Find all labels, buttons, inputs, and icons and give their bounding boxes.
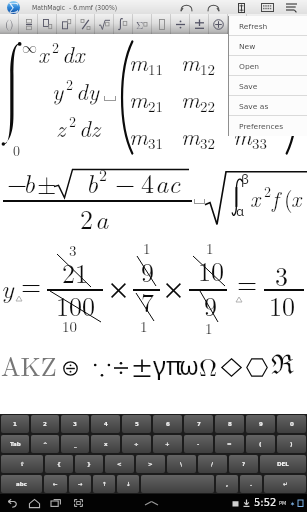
staticText: 22: [200, 95, 216, 116]
staticText: 9: [141, 253, 155, 290]
button[interactable]: Undo: [178, 0, 194, 14]
staticText: ÷: [134, 441, 139, 447]
button[interactable]: Preferences: [228, 116, 307, 136]
staticText: γ: [153, 348, 166, 382]
staticText: 32: [200, 132, 216, 153]
button[interactable]: More: [228, 14, 247, 34]
staticText: ±: [37, 172, 57, 197]
button[interactable]: .: [240, 475, 262, 493]
staticText: 31: [148, 132, 164, 153]
button[interactable]: Screenshot: [70, 495, 86, 511]
button[interactable]: Space: [141, 475, 214, 493]
button[interactable]: ↑: [93, 475, 115, 493]
button[interactable]: Summation: [133, 14, 152, 34]
button[interactable]: ↵: [264, 475, 306, 493]
button[interactable]: Back: [4, 495, 20, 511]
button[interactable]: Keyboard: [260, 0, 274, 14]
button[interactable]: Insert: [209, 14, 228, 34]
button[interactable]: Redo: [205, 0, 221, 14]
staticText: 10: [198, 252, 225, 289]
staticText: \: [180, 461, 183, 467]
button[interactable]: -: [184, 435, 213, 453]
button[interactable]: Bracket: [152, 14, 171, 34]
staticText: b: [23, 164, 35, 201]
button[interactable]: 0: [277, 415, 306, 433]
button[interactable]: ^: [31, 435, 59, 453]
staticText: m: [181, 45, 200, 78]
staticText: Ω: [199, 348, 218, 383]
button[interactable]: _: [61, 435, 89, 453]
button[interactable]: >: [136, 455, 165, 473]
button[interactable]: Parentheses: [0, 14, 19, 34]
staticText: m: [181, 119, 200, 152]
button[interactable]: }: [75, 455, 103, 473]
staticText: 2: [66, 74, 73, 94]
staticText: 5: [135, 421, 139, 427]
staticText: f: [272, 182, 279, 213]
button[interactable]: Save: [228, 76, 307, 96]
staticText: Preferences: [239, 122, 284, 131]
button[interactable]: ,: [216, 475, 238, 493]
staticText: <: [117, 461, 122, 467]
button[interactable]: \: [167, 455, 196, 473]
button[interactable]: /: [198, 455, 227, 473]
button[interactable]: 5: [122, 415, 151, 433]
button[interactable]: Documents: [235, 1, 248, 14]
button[interactable]: Menu: [284, 0, 298, 14]
button[interactable]: 6: [153, 415, 182, 433]
staticText: 2: [43, 421, 47, 427]
button[interactable]: Fraction: [19, 14, 38, 34]
button[interactable]: ↓: [117, 475, 139, 493]
button[interactable]: Superscript: [57, 14, 76, 34]
button[interactable]: →: [69, 475, 91, 493]
button[interactable]: Integral: [114, 14, 133, 34]
button[interactable]: (: [246, 435, 275, 453]
staticText: m: [233, 82, 252, 115]
button[interactable]: 8: [215, 415, 244, 433]
button[interactable]: +: [153, 435, 182, 453]
button[interactable]: 3: [61, 415, 89, 433]
button[interactable]: ?: [229, 455, 258, 473]
staticText: =: [237, 264, 258, 301]
button[interactable]: 7: [184, 415, 213, 433]
button[interactable]: 1: [1, 415, 29, 433]
staticText: >: [148, 461, 153, 467]
staticText: 6: [166, 421, 170, 427]
staticText: 9: [259, 421, 263, 427]
staticText: New: [239, 42, 256, 51]
button[interactable]: Home: [26, 495, 42, 511]
button[interactable]: New: [228, 36, 307, 56]
button[interactable]: ): [277, 435, 306, 453]
button[interactable]: Tab: [1, 435, 29, 453]
button[interactable]: x: [91, 435, 120, 453]
staticText: }: [87, 461, 91, 467]
button[interactable]: 4: [91, 415, 120, 433]
staticText: 2: [52, 37, 59, 57]
staticText: m: [129, 82, 148, 115]
button[interactable]: Recent apps: [48, 495, 64, 511]
button[interactable]: MathMagic app icon: [7, 1, 20, 14]
button[interactable]: 2: [31, 415, 59, 433]
button[interactable]: DEL: [260, 455, 306, 473]
button[interactable]: Square root: [95, 14, 114, 34]
staticText: 33: [252, 132, 268, 153]
button[interactable]: <: [105, 455, 134, 473]
button[interactable]: Save as: [228, 96, 307, 116]
button[interactable]: ←: [44, 475, 67, 493]
button[interactable]: {: [45, 455, 73, 473]
button[interactable]: Open: [228, 56, 307, 76]
button[interactable]: Subscript: [38, 14, 57, 34]
staticText: x: [104, 441, 108, 447]
button[interactable]: ⇧: [1, 455, 43, 473]
staticText: 7: [197, 421, 201, 427]
staticText: (): [5, 19, 14, 30]
button[interactable]: Refresh: [228, 16, 307, 36]
button[interactable]: =: [215, 435, 244, 453]
button[interactable]: 9: [246, 415, 275, 433]
button[interactable]: abc: [1, 475, 42, 493]
button[interactable]: Division: [171, 14, 190, 34]
button[interactable]: Slashed fraction: [76, 14, 95, 34]
button[interactable]: ÷: [122, 435, 151, 453]
button[interactable]: Plus minus: [190, 14, 209, 34]
staticText: Σ: [136, 18, 144, 29]
